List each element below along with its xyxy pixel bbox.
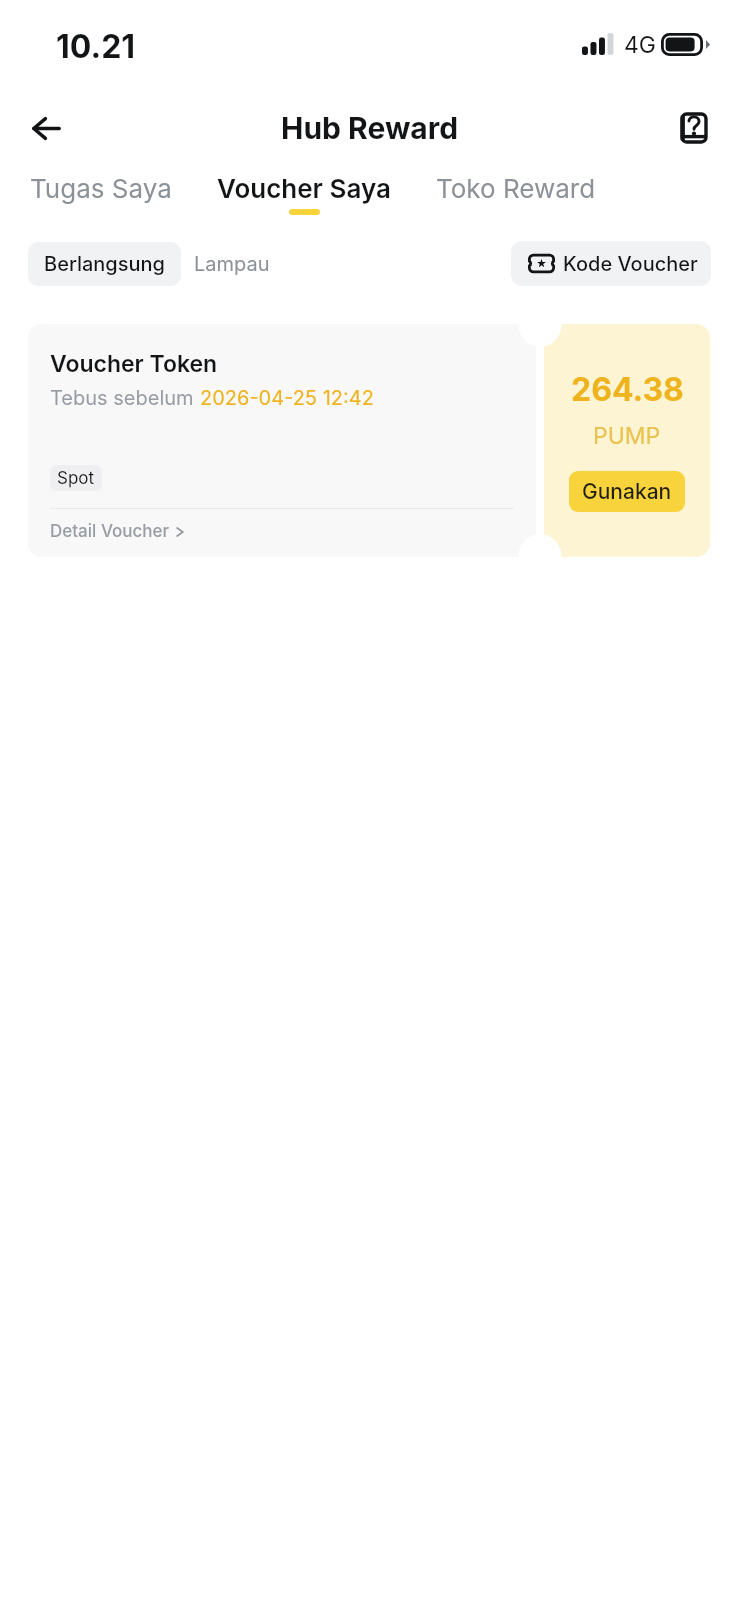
- staticText: 2026-04-25 12:42: [200, 386, 374, 410]
- button[interactable]: Gunakan: [569, 471, 685, 512]
- staticText: Berlangsung: [44, 252, 165, 276]
- staticText: Spot: [57, 468, 95, 489]
- button[interactable]: Berlangsung: [28, 242, 181, 286]
- staticText: Tugas Saya: [30, 173, 172, 204]
- staticText: Lampau: [194, 252, 270, 276]
- button[interactable]: Detail Voucher: [50, 521, 185, 542]
- staticText: Hub Reward: [281, 110, 459, 146]
- button[interactable]: Voucher Token: [28, 324, 536, 557]
- staticText: Voucher Token: [50, 350, 218, 378]
- staticText: Detail Voucher: [50, 521, 170, 542]
- staticText: 10.21: [56, 27, 136, 66]
- button[interactable]: Voucher Saya: [217, 173, 391, 215]
- staticText: PUMP: [593, 422, 661, 450]
- button[interactable]: Lampau: [181, 242, 286, 286]
- staticText: Toko Reward: [436, 173, 596, 204]
- staticText: Tebus sebelum: [50, 386, 200, 410]
- button[interactable]: Tugas Saya: [30, 173, 172, 215]
- button[interactable]: Back: [18, 100, 74, 156]
- staticText: Voucher Saya: [217, 173, 391, 204]
- button[interactable]: Kode Voucher: [511, 241, 711, 286]
- button[interactable]: Help: [667, 101, 721, 155]
- button[interactable]: Toko Reward: [436, 173, 596, 215]
- staticText: 4G: [624, 31, 657, 59]
- staticText: 264.38: [571, 370, 684, 409]
- staticText: Gunakan: [582, 479, 672, 504]
- staticText: Kode Voucher: [563, 252, 698, 276]
